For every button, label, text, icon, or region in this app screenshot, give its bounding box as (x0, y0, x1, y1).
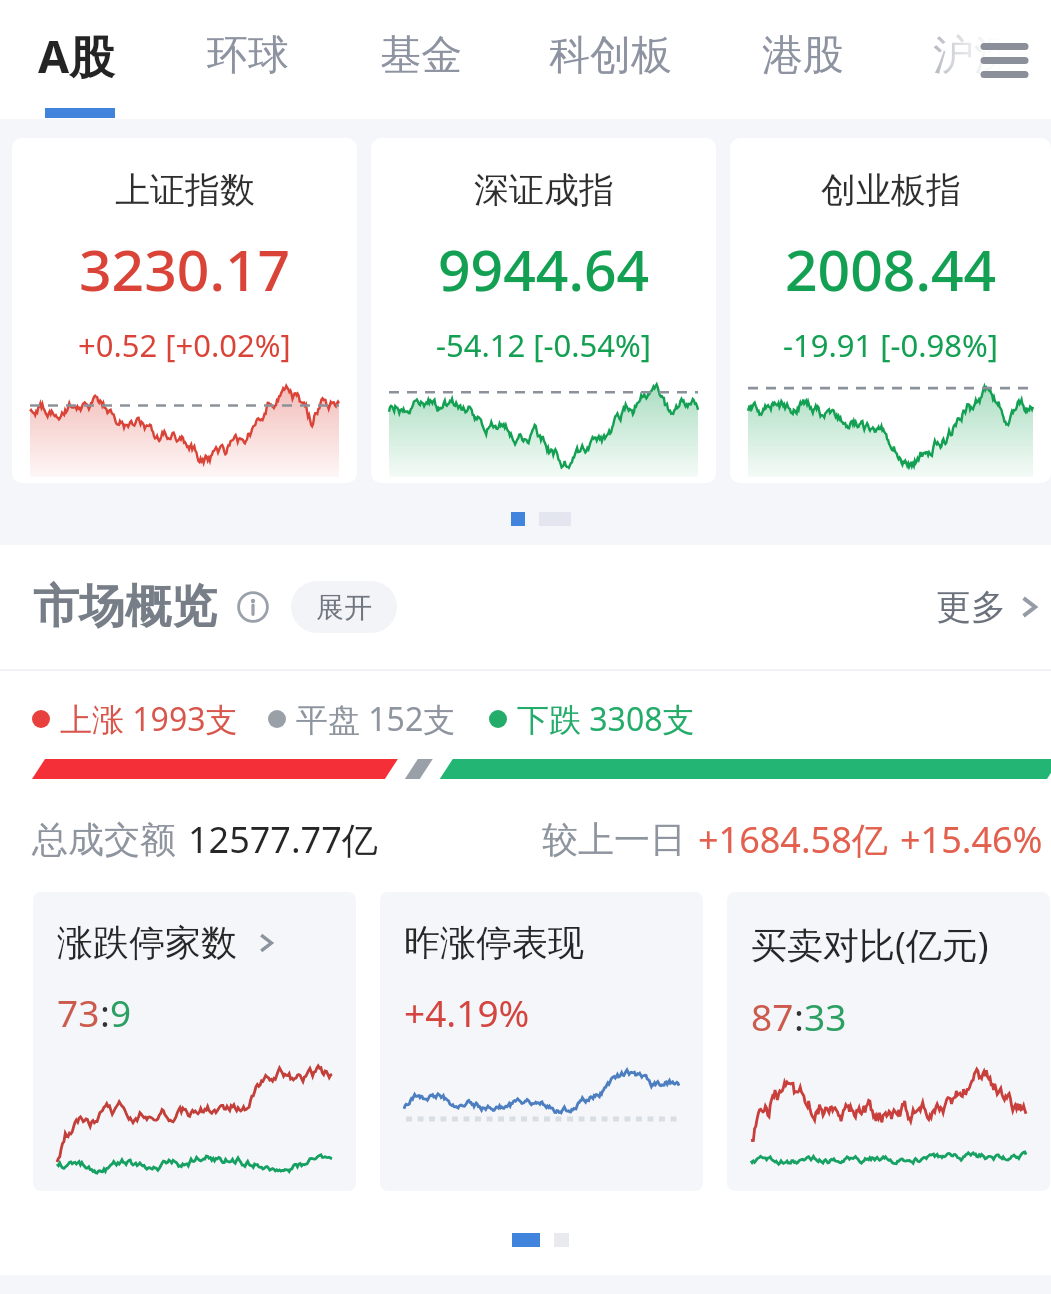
staticText: -19.91 [-0.98%] (783, 324, 998, 366)
staticText: : (794, 991, 804, 1041)
staticText: 下跌 3308支 (517, 697, 695, 741)
staticText: 3230.17 (79, 230, 291, 308)
button[interactable]: 基金 (380, 0, 462, 119)
staticText: 33 (804, 991, 847, 1041)
button[interactable]: 科创板 (549, 0, 672, 119)
button[interactable]: A股 (38, 0, 115, 119)
staticText: 沪深 (933, 30, 1015, 82)
staticText: 港股 (762, 30, 844, 82)
staticText: 市场概览 (33, 578, 217, 636)
staticText: 87 (751, 991, 794, 1041)
staticText: 上涨 1993支 (60, 697, 238, 741)
staticText: 总成交额 (32, 817, 176, 862)
button[interactable]: 买卖对比(亿元) (727, 892, 1050, 1191)
staticText: +4.19% (404, 987, 530, 1037)
staticText: +0.52 [+0.02%] (78, 324, 291, 366)
button[interactable]: 更多 (936, 575, 1046, 639)
staticText: 创业板指 (821, 168, 961, 212)
staticText: 环球 (207, 30, 289, 82)
button[interactable]: 港股 (762, 0, 844, 119)
staticText: 更多 (936, 585, 1006, 629)
button[interactable]: 展开 (291, 581, 397, 633)
button[interactable]: 涨跌停家数 (33, 892, 356, 1191)
button[interactable]: Info (237, 591, 269, 623)
staticText: 73 (57, 987, 100, 1037)
staticText: 深证成指 (474, 168, 614, 212)
staticText: 昨涨停表现 (404, 920, 584, 965)
button[interactable]: Menu (968, 24, 1040, 96)
staticText: -54.12 [-0.54%] (436, 324, 651, 366)
button[interactable]: 上证指数 (12, 138, 357, 483)
button[interactable]: 环球 (207, 0, 289, 119)
button[interactable]: Page 1 of 2 (511, 512, 571, 526)
staticText: 科创板 (549, 30, 672, 82)
staticText: 12577.77亿 (188, 815, 378, 864)
staticText: +1684.58亿 (698, 815, 888, 864)
staticText: 上证指数 (115, 168, 255, 212)
button[interactable]: 沪深 (933, 0, 1015, 119)
button[interactable]: 昨涨停表现 (380, 892, 703, 1191)
button[interactable]: 深证成指 (371, 138, 716, 483)
staticText: 9944.64 (438, 230, 650, 308)
staticText: 买卖对比(亿元) (751, 920, 989, 969)
staticText: 涨跌停家数 (57, 920, 237, 965)
staticText: 展开 (316, 590, 372, 625)
staticText: 基金 (380, 30, 462, 82)
button[interactable]: Page 1 of 2 (512, 1233, 569, 1247)
staticText: 9 (110, 987, 132, 1037)
button[interactable]: 创业板指 (730, 138, 1051, 483)
staticText: 2008.44 (785, 230, 997, 308)
staticText: 平盘 152支 (296, 697, 456, 741)
staticText: 较上一日 (542, 817, 686, 862)
staticText: : (100, 987, 110, 1037)
staticText: A股 (38, 25, 115, 86)
staticText: +15.46% (900, 815, 1043, 864)
